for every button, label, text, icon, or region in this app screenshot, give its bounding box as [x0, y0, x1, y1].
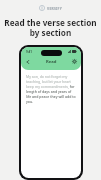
staticText: Read the verse section by section — [0, 17, 101, 39]
staticText: 9:41 — [26, 50, 32, 54]
button[interactable]: Settings — [70, 57, 79, 66]
staticText: Read — [46, 59, 57, 65]
staticText: My son, do not forget my teaching, but l… — [26, 74, 76, 104]
button[interactable]: VERSIFY — [37, 4, 64, 12]
staticText: VERSIFY — [47, 6, 62, 11]
button[interactable]: Back — [23, 57, 32, 66]
